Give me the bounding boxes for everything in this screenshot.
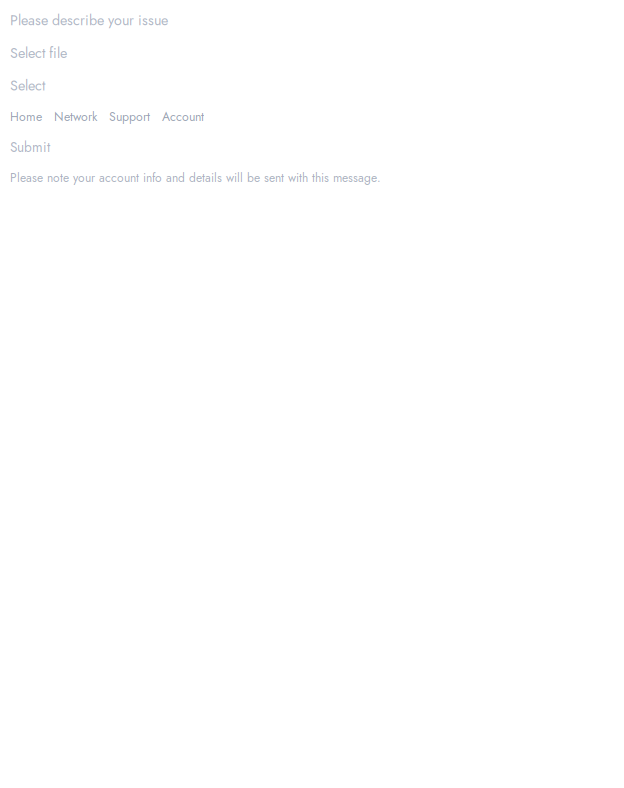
staticText: Select file xyxy=(10,43,67,63)
staticText: Please note your account info and detail… xyxy=(10,169,381,186)
staticText: Select xyxy=(10,75,45,96)
staticText: Please describe your issue xyxy=(10,10,168,31)
staticText: Home Network Support Account xyxy=(10,108,204,125)
staticText: Submit xyxy=(10,138,50,157)
